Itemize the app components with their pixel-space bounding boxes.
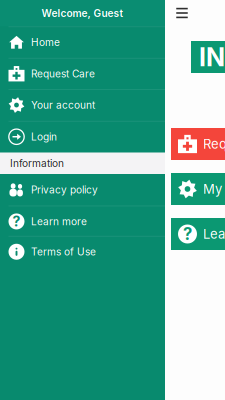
button[interactable]: Request Care (171, 128, 225, 160)
button[interactable]: Privacy policy (0, 174, 165, 205)
staticText: Request Care (31, 68, 95, 80)
button[interactable]: My Account (171, 173, 225, 205)
staticText: Welcome, Guest (41, 7, 123, 19)
staticText: INFOCARE (199, 42, 225, 72)
staticText: Learn more (31, 215, 87, 228)
staticText: Home (31, 36, 60, 48)
staticText: Privacy policy (31, 184, 98, 196)
staticText: Your account (31, 99, 95, 111)
button[interactable]: Login (0, 121, 165, 152)
button[interactable]: Terms of Use (0, 236, 165, 267)
staticText: Terms of Use (31, 246, 96, 258)
staticText: My Account (203, 181, 225, 197)
staticText: Request Care (203, 136, 225, 152)
staticText: Login (31, 131, 57, 143)
button[interactable]: Request Care (0, 58, 165, 89)
button[interactable]: Your account (0, 89, 165, 121)
button[interactable]: ? (0, 206, 165, 237)
button[interactable]: Menu (172, 3, 192, 23)
staticText: Information (10, 157, 64, 169)
button[interactable]: Home (0, 26, 165, 58)
staticText: ? (12, 213, 20, 230)
button[interactable]: ? (171, 218, 225, 250)
staticText: ? (183, 224, 192, 244)
staticText: Learn more (203, 226, 225, 242)
